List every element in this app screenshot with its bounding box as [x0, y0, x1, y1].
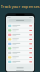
button[interactable]: [7, 24, 33, 28]
button[interactable]: Add expense: [6, 67, 34, 69]
button[interactable]: [7, 60, 33, 64]
button[interactable]: [7, 29, 33, 32]
button[interactable]: [7, 47, 33, 50]
staticText: Track your expenses: [0, 4, 39, 9]
button[interactable]: Search expenses: [6, 18, 34, 23]
button[interactable]: [7, 42, 33, 46]
button[interactable]: [7, 51, 33, 55]
button[interactable]: [7, 56, 33, 59]
button[interactable]: [7, 38, 33, 41]
button[interactable]: [7, 33, 33, 37]
